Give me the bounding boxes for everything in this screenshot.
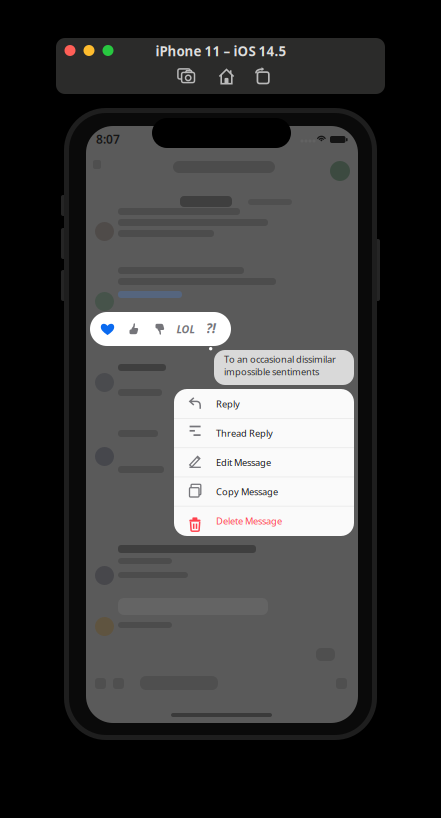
button[interactable]: Love reaction bbox=[206, 392, 234, 426]
button[interactable]: Home bbox=[212, 400, 229, 418]
staticText: Edit Message bbox=[216, 456, 271, 469]
button[interactable]: Rotate bbox=[212, 399, 229, 418]
staticText: Reply bbox=[216, 398, 240, 410]
staticText: Thread Reply bbox=[216, 427, 273, 439]
staticText: Copy Message bbox=[216, 485, 278, 498]
button[interactable]: Thread Reply bbox=[130, 394, 310, 424]
button[interactable]: Minimise bbox=[215, 403, 226, 414]
button[interactable]: ?! bbox=[208, 392, 232, 426]
staticText: Delete Message bbox=[216, 515, 282, 527]
button[interactable]: Reply bbox=[130, 394, 310, 424]
button[interactable]: LOL bbox=[207, 392, 233, 426]
button[interactable]: Delete Message bbox=[130, 394, 310, 424]
button[interactable]: Edit Message bbox=[130, 394, 310, 424]
button[interactable]: Thumbs down reaction bbox=[207, 392, 233, 426]
staticText: ?! bbox=[206, 319, 216, 337]
button[interactable]: Screenshot bbox=[211, 401, 230, 417]
staticText: 8:07 bbox=[96, 131, 120, 147]
button[interactable]: Close bbox=[215, 403, 226, 414]
button[interactable]: Zoom bbox=[215, 403, 226, 414]
staticText: LOL bbox=[176, 322, 195, 336]
button[interactable]: Thumbs up reaction bbox=[207, 392, 233, 426]
staticText: To an occasional dissimilar impossible s… bbox=[224, 353, 336, 378]
button[interactable]: Copy Message bbox=[130, 394, 310, 424]
staticText: iPhone 11 – iOS 14.5 bbox=[155, 42, 286, 60]
